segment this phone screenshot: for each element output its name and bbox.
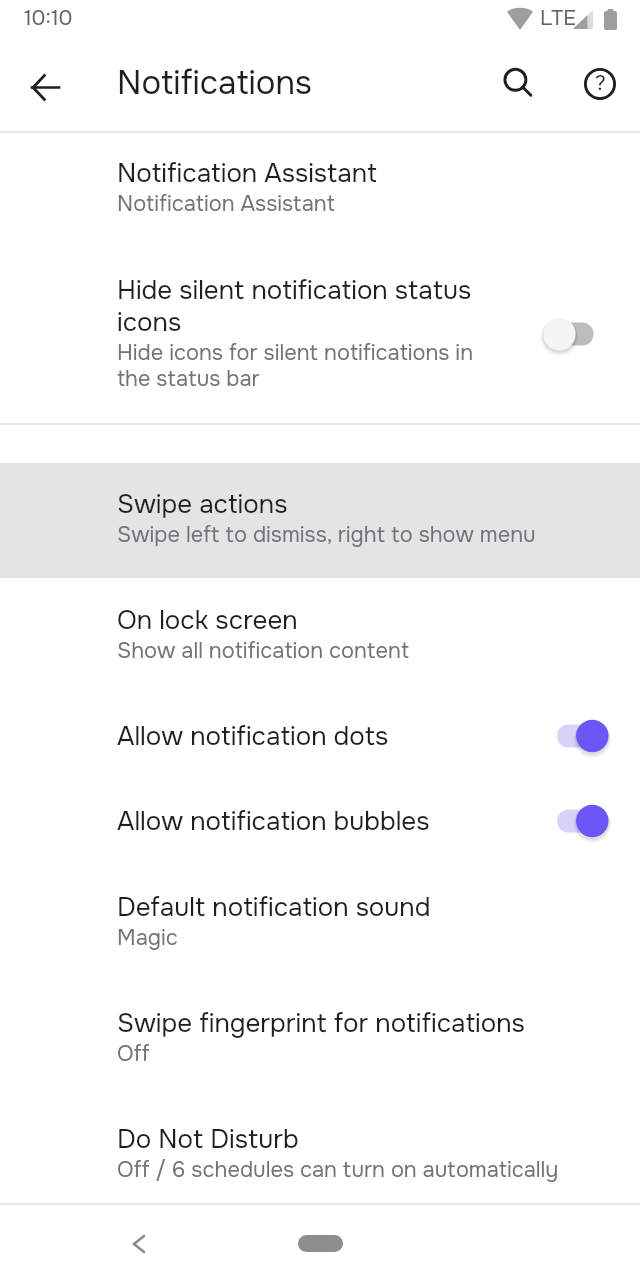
- staticText: Notification Assistant: [117, 190, 335, 218]
- button[interactable]: Toggle off: [535, 306, 619, 362]
- staticText: Magic: [117, 924, 178, 952]
- staticText: Allow notification bubbles: [117, 805, 430, 838]
- button[interactable]: [0, 864, 640, 980]
- staticText: Allow notification dots: [117, 720, 389, 753]
- button[interactable]: [0, 980, 640, 1096]
- staticText: Off: [117, 1040, 150, 1068]
- staticText: Notifications: [117, 62, 312, 104]
- staticText: LTE: [540, 5, 576, 32]
- button[interactable]: [0, 694, 640, 779]
- button[interactable]: Help: [570, 54, 630, 114]
- staticText: ?: [595, 70, 606, 97]
- button[interactable]: [0, 1096, 640, 1203]
- button[interactable]: Back: [111, 1216, 167, 1272]
- staticText: Hide silent notification status icons: [117, 274, 495, 339]
- button[interactable]: [0, 779, 640, 864]
- button[interactable]: Search: [489, 54, 549, 114]
- staticText: Show all notification content: [117, 637, 409, 665]
- button[interactable]: [0, 134, 640, 250]
- staticText: Off / 6 schedules can turn on automatica…: [117, 1156, 559, 1184]
- button[interactable]: Home: [280, 1216, 360, 1272]
- staticText: Hide icons for silent notifications in t…: [117, 339, 495, 393]
- button[interactable]: Back: [15, 57, 76, 118]
- staticText: Swipe fingerprint for notifications: [117, 1007, 525, 1040]
- staticText: Do Not Disturb: [117, 1123, 299, 1156]
- button[interactable]: Toggle on: [535, 708, 619, 764]
- button[interactable]: Toggle on: [535, 793, 619, 849]
- button[interactable]: [0, 578, 640, 694]
- button[interactable]: [0, 250, 640, 423]
- staticText: Default notification sound: [117, 891, 431, 924]
- staticText: Swipe actions: [117, 488, 288, 521]
- staticText: Notification Assistant: [117, 157, 377, 190]
- button[interactable]: [0, 463, 640, 578]
- staticText: Swipe left to dismiss, right to show men…: [117, 521, 536, 549]
- staticText: On lock screen: [117, 604, 298, 637]
- staticText: 10:10: [24, 5, 73, 32]
